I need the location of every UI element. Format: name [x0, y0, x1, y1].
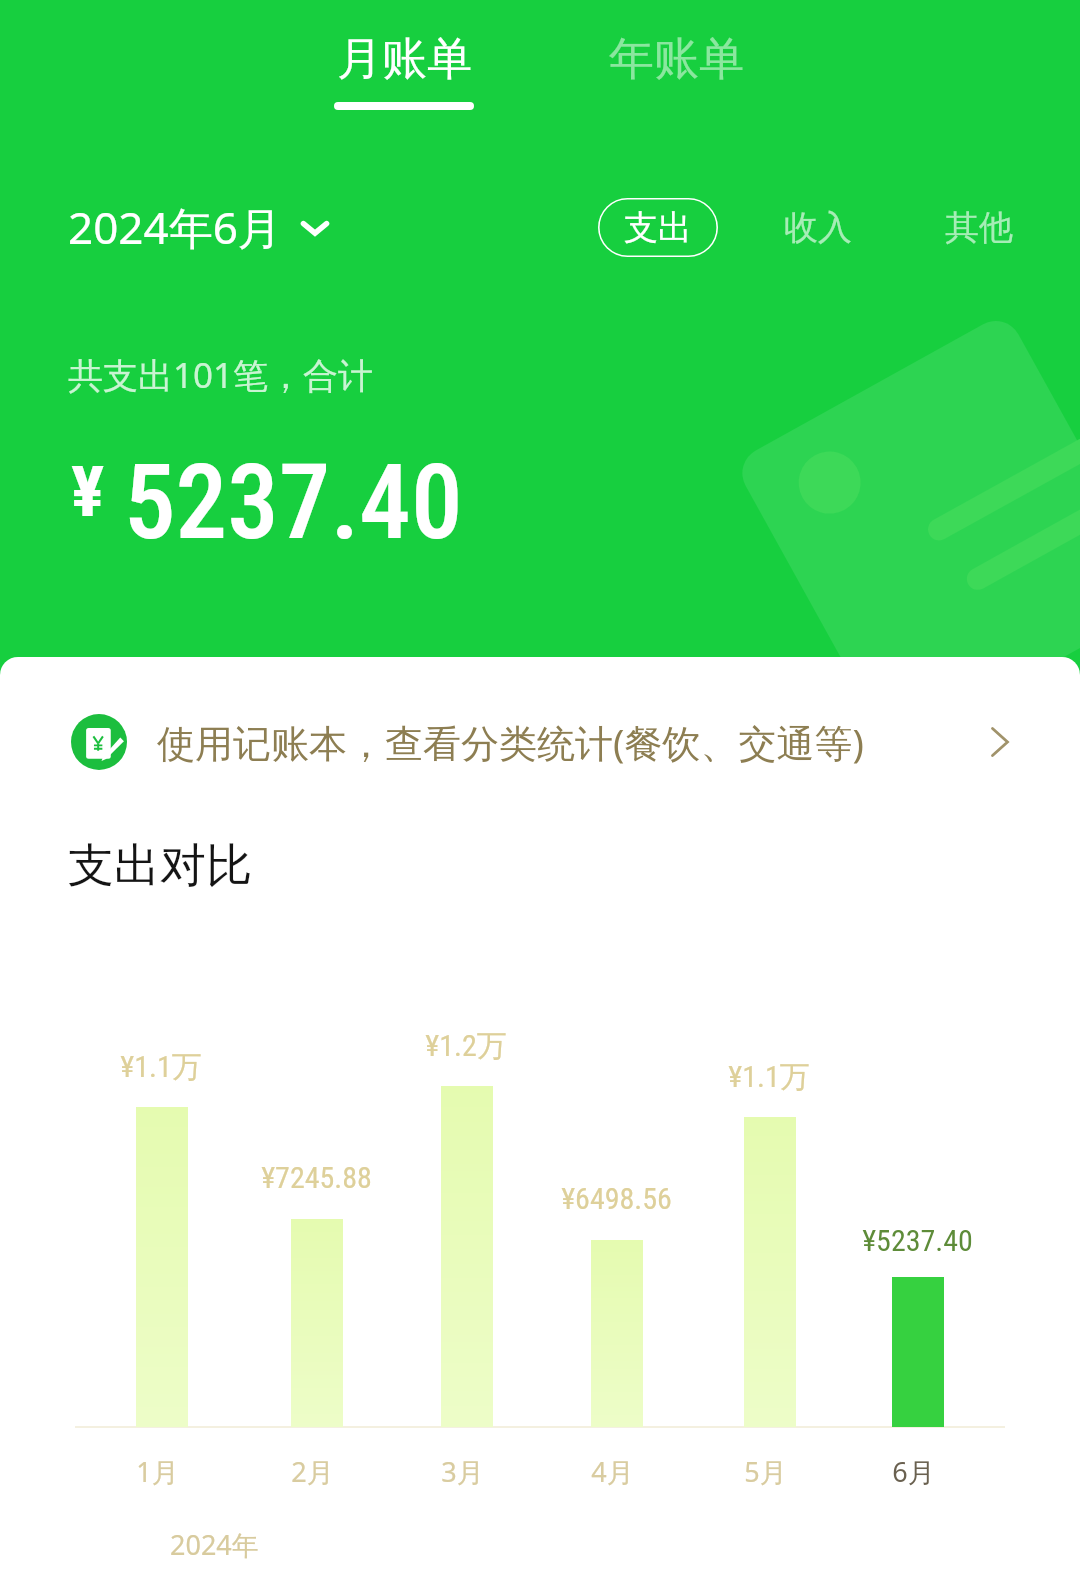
button[interactable]: 收入 — [770, 198, 866, 257]
button[interactable]: 选择月份 2024年6月 — [68, 196, 332, 258]
staticText: 年账单 — [609, 31, 744, 88]
staticText: 其他 — [945, 206, 1013, 249]
staticText: 支出对比 — [68, 837, 252, 895]
staticText: 支出 — [624, 206, 692, 249]
button[interactable]: 支出 — [598, 198, 718, 257]
staticText: ¥5237.40 — [862, 1223, 973, 1258]
staticText: ¥6498.56 — [561, 1181, 672, 1216]
staticText: 5237.40 — [124, 442, 463, 563]
staticText: 2024年6月 — [68, 197, 282, 257]
button[interactable]: 其他 — [931, 198, 1027, 257]
staticText: 4月 — [591, 1453, 634, 1490]
staticText: ¥ — [71, 451, 105, 533]
staticText: 共支出101笔，合计 — [68, 351, 374, 399]
staticText: 5月 — [744, 1453, 787, 1490]
staticText: ¥1.1万 — [120, 1048, 202, 1086]
staticText: 2024年 — [170, 1526, 259, 1563]
staticText: 6月 — [892, 1453, 935, 1490]
staticText: 月账单 — [337, 31, 472, 88]
staticText: ¥1.1万 — [728, 1058, 810, 1096]
staticText: ¥7245.88 — [261, 1160, 372, 1195]
button[interactable]: 使用记账本，查看分类统计(餐饮、交通等) — [0, 700, 1080, 784]
staticText: 2月 — [291, 1453, 334, 1490]
button[interactable]: 年账单 — [591, 31, 761, 110]
staticText: 1月 — [136, 1453, 179, 1490]
staticText: 3月 — [441, 1453, 484, 1490]
staticText: 收入 — [784, 206, 852, 249]
staticText: 使用记账本，查看分类统计(餐饮、交通等) — [157, 716, 864, 768]
button[interactable]: 月账单 — [319, 31, 489, 110]
staticText: ¥1.2万 — [425, 1027, 507, 1065]
